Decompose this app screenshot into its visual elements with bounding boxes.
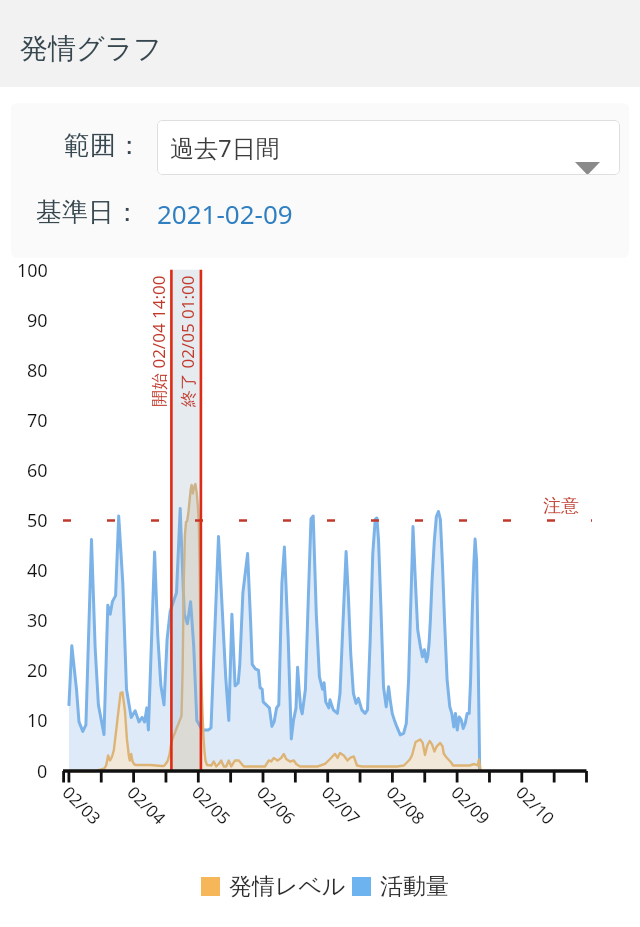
other: 範囲を選択 <box>575 162 600 175</box>
staticText: 範囲： <box>64 129 142 162</box>
button[interactable]: 2021-02-09 <box>157 196 293 231</box>
button[interactable]: 過去7日間 <box>157 120 620 175</box>
staticText: 基準日： <box>36 196 140 229</box>
button[interactable]: 発情レベル <box>201 872 346 901</box>
staticText: 過去7日間 <box>170 131 280 164</box>
staticText: 活動量 <box>380 872 449 901</box>
staticText: 発情レベル <box>229 872 346 901</box>
staticText: 発情グラフ <box>20 31 162 66</box>
button[interactable]: 活動量 <box>352 872 449 901</box>
